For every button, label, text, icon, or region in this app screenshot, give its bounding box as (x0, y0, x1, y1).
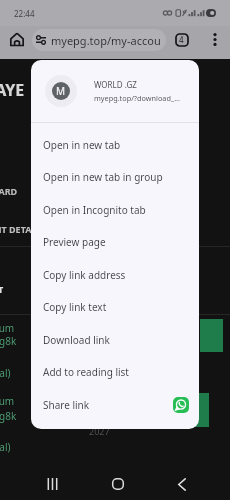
button[interactable]: Share link (31, 388, 199, 421)
staticText: xyzg8k (0, 334, 17, 348)
staticText: xyzg8k (0, 409, 17, 423)
staticText: Share link (43, 398, 90, 412)
button[interactable]: Copy link address (31, 258, 199, 291)
button[interactable]: myepg.top/my-accou (32, 29, 166, 51)
staticText: Preview page (43, 235, 106, 249)
staticText: Add to reading list (43, 365, 129, 379)
button[interactable]: Tabs (168, 26, 195, 53)
staticText: premium (0, 321, 15, 335)
button[interactable]: Copy link text (31, 291, 199, 323)
staticText: Copy link text (43, 300, 107, 314)
staticText: WORLD PLAYE (0, 79, 25, 101)
button[interactable]: Open in new tab in group (31, 161, 199, 193)
staticText: DASHBOARD (0, 185, 18, 197)
staticText: M (56, 84, 66, 98)
button[interactable]: Home (1, 26, 32, 53)
staticText: 22:44 (14, 8, 35, 19)
button[interactable]: M (31, 60, 199, 122)
button[interactable]: More options (201, 26, 228, 53)
staticText: 4 (179, 34, 184, 45)
button[interactable]: Open in Incognito tab (31, 193, 199, 226)
button[interactable]: Open in new tab (31, 128, 199, 161)
button[interactable]: Share via WhatsApp (173, 397, 189, 413)
staticText: 2027 (89, 425, 110, 437)
staticText: Open in new tab in group (43, 170, 163, 184)
button[interactable]: Back (162, 464, 202, 500)
staticText: Open in Incognito tab (43, 203, 146, 217)
staticText: premium (0, 394, 15, 408)
staticText: (trial) (0, 366, 11, 380)
staticText: myepg.top/?download_... (94, 93, 180, 103)
staticText: ACCOUNT DETAILS (0, 223, 45, 235)
button[interactable]: Add to reading list (31, 356, 199, 388)
button[interactable]: Download link (31, 323, 199, 356)
button[interactable]: Home (98, 464, 138, 500)
staticText: WORLD .GZ (94, 79, 137, 90)
button[interactable]: Renew (194, 393, 209, 427)
staticText: Copy link address (43, 268, 126, 282)
button[interactable]: Preview page (31, 226, 199, 258)
button[interactable]: Recent apps (32, 464, 72, 500)
staticText: myepg.top/my-accou (51, 33, 161, 48)
staticText: HOST (0, 283, 4, 295)
staticText: Open in new tab (43, 138, 121, 152)
staticText: Download link (43, 333, 110, 347)
staticText: (trial) (0, 440, 11, 454)
